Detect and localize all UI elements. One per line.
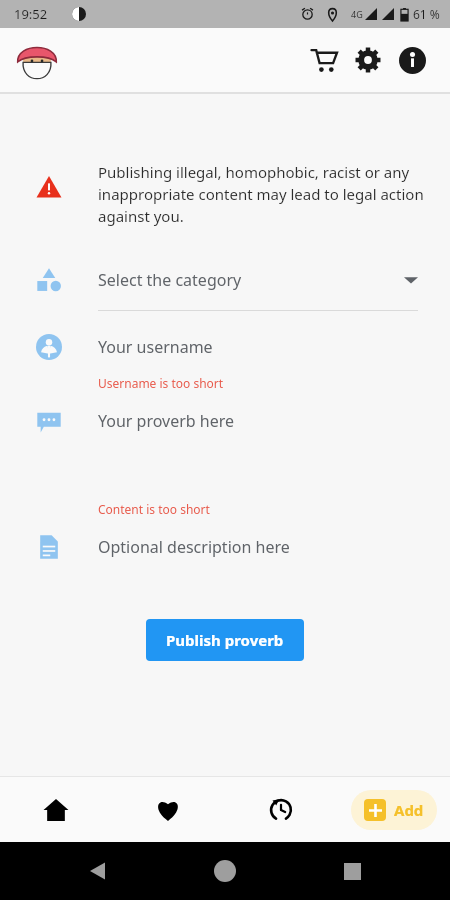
button[interactable]: Home bbox=[0, 777, 112, 842]
staticText: 19:52 bbox=[14, 5, 48, 23]
button[interactable]: History bbox=[224, 777, 337, 842]
button[interactable]: Publish proverb bbox=[146, 619, 304, 661]
staticText: Publish proverb bbox=[166, 630, 284, 650]
staticText: 4G bbox=[351, 8, 363, 20]
other: Back bbox=[88, 861, 108, 881]
button[interactable]: Add bbox=[351, 790, 437, 830]
staticText: Your proverb here bbox=[98, 410, 235, 432]
button[interactable]: Cart bbox=[302, 38, 346, 82]
button[interactable]: Optional description here bbox=[0, 529, 450, 565]
staticText: Add bbox=[394, 800, 424, 820]
other: Home bbox=[214, 860, 236, 882]
staticText: Your username bbox=[98, 336, 213, 358]
button[interactable]: Settings bbox=[346, 38, 390, 82]
staticText: Publishing illegal, homophobic, racist o… bbox=[98, 162, 428, 227]
button[interactable]: Your proverb here bbox=[0, 403, 450, 439]
button[interactable]: Favorites bbox=[112, 777, 224, 842]
staticText: Username is too short bbox=[98, 375, 224, 391]
staticText: Optional description here bbox=[98, 536, 290, 558]
staticText: Select the category bbox=[98, 269, 404, 291]
staticText: 61 % bbox=[413, 6, 440, 22]
button[interactable]: Select the category bbox=[0, 249, 450, 311]
staticText: Content is too short bbox=[98, 501, 210, 517]
button[interactable]: Info bbox=[390, 38, 434, 82]
button[interactable]: Your username bbox=[0, 329, 450, 365]
button[interactable]: Profile bbox=[14, 37, 60, 83]
